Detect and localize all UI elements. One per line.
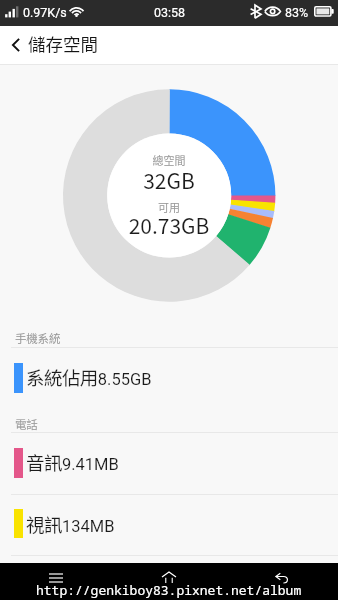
staticText: http://genkiboy83.pixnet.net/album: [36, 581, 302, 599]
staticText: 系統佔用8.55GB: [26, 364, 152, 391]
staticText: 電話: [15, 416, 38, 433]
button[interactable]: Back: [0, 26, 30, 65]
button[interactable]: 視訊134MB: [0, 495, 338, 555]
button[interactable]: 系統佔用8.55GB: [0, 348, 338, 391]
staticText: 音訊9.41MB: [26, 449, 119, 476]
staticText: 03:58: [154, 5, 186, 20]
staticText: 83%: [285, 5, 309, 20]
staticText: 32GB: [89, 165, 249, 195]
button[interactable]: Back: [225, 563, 338, 600]
button[interactable]: 音訊9.41MB: [0, 433, 338, 494]
staticText: 0.97K/s: [23, 5, 67, 20]
staticText: 手機系統: [15, 330, 61, 347]
staticText: 視訊134MB: [26, 511, 115, 538]
staticText: 總空間: [89, 152, 249, 168]
staticText: 可用: [89, 199, 249, 215]
staticText: 儲存空間: [28, 31, 98, 56]
button[interactable]: Recent apps: [0, 563, 112, 600]
staticText: 20.73GB: [89, 210, 249, 240]
button[interactable]: Home: [112, 563, 225, 600]
